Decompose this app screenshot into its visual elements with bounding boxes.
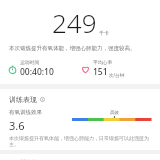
- button[interactable]: Average heart rate: [80, 58, 153, 79]
- button[interactable]: 无氧训练效果: [0, 159, 160, 160]
- other: Average heart rate: [80, 64, 90, 74]
- staticText: 249: [52, 5, 97, 40]
- staticText: 00:40:10: [20, 66, 54, 78]
- button[interactable]: 训练表现: [0, 95, 160, 104]
- staticText: 训练表现: [9, 95, 37, 104]
- button[interactable]: Duration: [7, 58, 80, 79]
- staticText: 本次锻炼提升有氧体能，增强心肺能力，强度较高。: [9, 45, 151, 52]
- staticText: 平均心率: [93, 59, 113, 65]
- staticText: 有氧训练效果: [9, 109, 42, 116]
- staticText: 高效: [110, 110, 119, 116]
- staticText: 本次锻炼提升有氧体能，增强心肺能力，日常锻炼可以此强度为主。: [9, 135, 151, 147]
- staticText: 千卡: [99, 30, 109, 36]
- button[interactable]: 有氧训练效果: [0, 109, 160, 133]
- staticText: 无氧训练效果: [9, 159, 42, 160]
- other: Duration: [7, 64, 17, 74]
- staticText: 运动时间: [20, 59, 40, 65]
- staticText: 151: [93, 66, 108, 78]
- staticText: 3.6: [9, 118, 25, 133]
- staticText: 次/分钟: [109, 72, 125, 78]
